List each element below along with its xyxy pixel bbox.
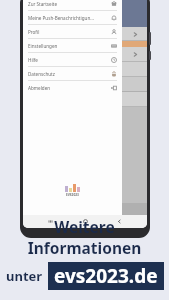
button[interactable]: Einstellungen xyxy=(23,39,122,53)
staticText: evs2023.de xyxy=(54,263,158,289)
button[interactable]: Recent apps xyxy=(44,215,57,228)
button[interactable] xyxy=(23,27,147,41)
staticText: Weitere Informationen xyxy=(0,216,169,258)
button[interactable]: Back xyxy=(113,215,126,228)
button[interactable] xyxy=(23,47,147,62)
staticText: Einstellungen xyxy=(28,43,108,49)
button[interactable] xyxy=(23,62,147,77)
staticText: Datenschutz xyxy=(28,71,108,77)
staticText: Profil xyxy=(28,29,108,35)
button[interactable] xyxy=(23,92,147,107)
staticText: unter xyxy=(6,267,43,285)
button[interactable]: Meine Push-Benachrichtigun… xyxy=(23,11,122,25)
staticText: Abmelden xyxy=(28,85,108,91)
button[interactable] xyxy=(23,77,147,92)
button[interactable]: Profil xyxy=(23,25,122,39)
staticText: EVS2023 xyxy=(66,193,79,197)
button[interactable]: Datenschutz xyxy=(23,67,122,81)
button[interactable]: Hilfe xyxy=(23,53,122,67)
staticText: Meine Push-Benachrichtigun… xyxy=(28,15,108,21)
staticText: Hilfe xyxy=(28,57,108,63)
button[interactable]: Home xyxy=(79,215,92,228)
staticText: Zur Startseite xyxy=(28,1,108,7)
button[interactable]: Zur Startseite xyxy=(23,0,122,11)
button[interactable]: Abmelden xyxy=(23,81,122,94)
